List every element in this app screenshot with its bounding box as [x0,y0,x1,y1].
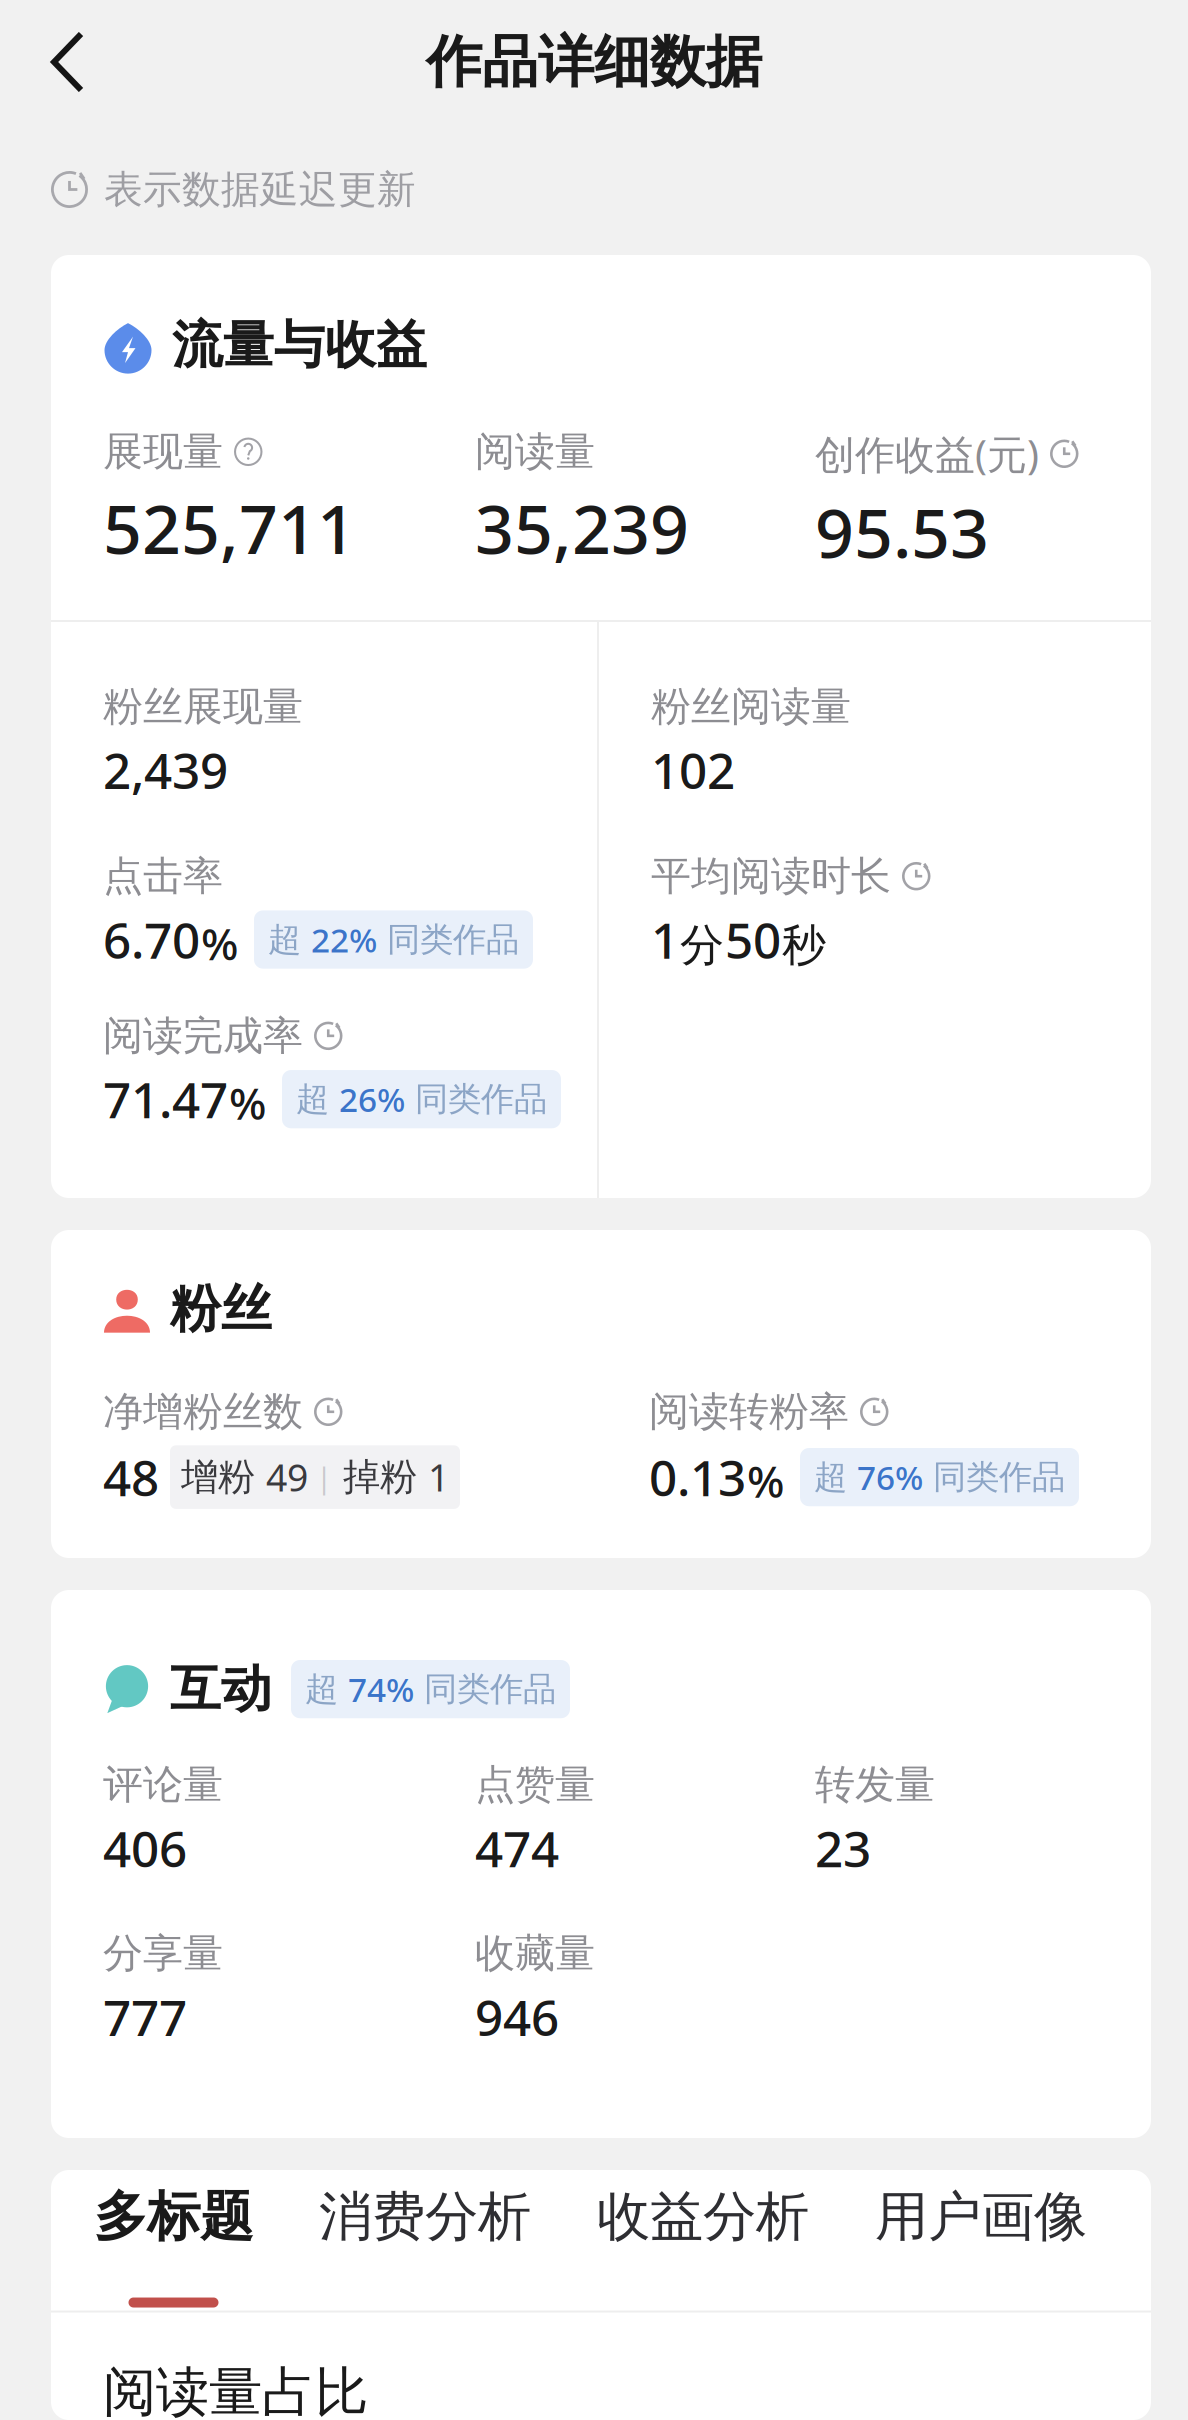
staticText: % [201,914,238,972]
staticText: 超 [296,1079,339,1120]
staticText: 525,711 [103,482,356,573]
staticText: 76% [857,1455,923,1499]
staticText: 超 [814,1457,857,1497]
staticText: 22% [311,917,377,962]
staticText: 阅读量占比 [103,2359,368,2420]
staticText: 2,439 [103,737,228,803]
staticText: 同类作品 [405,1079,547,1120]
staticText: 946 [475,1984,559,2049]
staticText: 50 [725,907,781,972]
staticText: 49 [266,1452,308,1502]
staticText: 48 [103,1444,159,1510]
staticText: % [747,1451,784,1510]
staticText: 同类作品 [414,1669,556,1709]
staticText: 分 [680,918,724,972]
staticText: 收藏量 [475,1929,595,1978]
staticText: 互动 [170,1658,272,1720]
staticText: 35,239 [475,482,689,573]
staticText: 秒 [782,918,826,972]
staticText: 阅读完成率 [103,1011,303,1060]
staticText: 收益分析 [597,2184,809,2249]
staticText: 多标题 [94,2184,253,2249]
staticText: 26% [339,1077,405,1121]
button[interactable]: Back [0,5,119,119]
staticText: 创作收益(元) [815,427,1039,480]
staticText: 转发量 [815,1760,935,1809]
staticText: 1 [428,1452,449,1502]
staticText: 95.53 [815,486,989,577]
staticText: 分享量 [103,1929,223,1978]
staticText: 粉丝展现量 [103,682,303,731]
staticText: 平均阅读时长 [651,852,891,901]
staticText: 评论量 [103,1760,223,1809]
staticText: 474 [475,1815,559,1881]
staticText: 71.47 [103,1066,228,1132]
staticText: 同类作品 [377,919,519,960]
staticText: 净增粉丝数 [103,1387,303,1436]
staticText: 粉丝阅读量 [651,682,851,731]
staticText: 展现量 [103,427,223,476]
staticText: 0.13 [649,1444,746,1510]
staticText: % [229,1073,266,1132]
staticText: 6.70 [103,907,200,972]
staticText: 74% [348,1667,414,1711]
staticText: 点击率 [103,852,223,901]
staticText: 流量与收益 [172,314,427,376]
staticText: 阅读量 [475,427,595,476]
staticText: 超 [268,919,311,960]
staticText: 777 [103,1984,187,2049]
staticText: 406 [103,1815,187,1881]
staticText: 粉丝 [170,1278,272,1340]
staticText: 23 [815,1815,871,1881]
staticText: 用户画像 [875,2184,1087,2249]
staticText: 增粉 [181,1454,266,1500]
staticText: 掉粉 [332,1454,428,1500]
staticText: 点赞量 [475,1760,595,1809]
staticText: 同类作品 [923,1457,1065,1497]
staticText: 表示数据延迟更新 [104,166,416,213]
staticText: 1 [651,907,679,972]
staticText: 消费分析 [319,2184,531,2249]
staticText: 102 [651,737,735,803]
button[interactable]: 用户画像 [842,2184,1120,2307]
staticText: 作品详细数据 [426,28,762,96]
staticText: 超 [305,1669,348,1709]
staticText: | [316,1458,332,1497]
button[interactable]: 多标题 [61,2184,286,2307]
button[interactable]: 收益分析 [564,2184,842,2307]
button[interactable]: 消费分析 [286,2184,564,2307]
staticText: 阅读转粉率 [649,1387,849,1436]
